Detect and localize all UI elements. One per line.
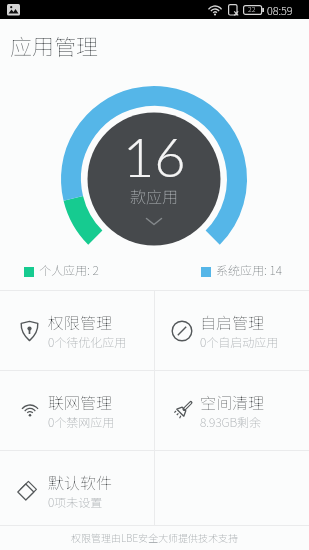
staticText: 08:59	[267, 2, 293, 18]
button[interactable]: 默认软件	[0, 451, 154, 530]
staticText: 0项未设置	[48, 493, 103, 510]
button[interactable]: 联网管理	[0, 371, 154, 450]
staticText: 联网管理	[48, 390, 113, 413]
staticText: 22	[248, 4, 256, 14]
staticText: 权限管理	[48, 310, 113, 333]
staticText: 个人应用: 2	[39, 261, 99, 278]
staticText: 0个禁网应用	[48, 413, 115, 430]
staticText: 系统应用: 14	[216, 261, 282, 278]
button[interactable]	[88, 113, 220, 245]
staticText: 款应用	[130, 184, 179, 207]
button[interactable]: 自启管理	[155, 291, 309, 370]
staticText: 自启管理	[200, 310, 265, 333]
staticText: 权限管理由LBE安全大师提供技术支持	[71, 530, 239, 544]
staticText: 0个自启动应用	[200, 333, 279, 350]
staticText: 16	[123, 124, 186, 189]
button[interactable]: 权限管理	[0, 291, 154, 370]
staticText: 8.93GB剩余	[200, 413, 262, 430]
staticText: 空间清理	[200, 390, 265, 413]
staticText: 应用管理	[10, 29, 99, 61]
staticText: 默认软件	[48, 470, 113, 493]
staticText: 0个待优化应用	[48, 333, 127, 350]
button[interactable]: 空间清理	[155, 371, 309, 450]
